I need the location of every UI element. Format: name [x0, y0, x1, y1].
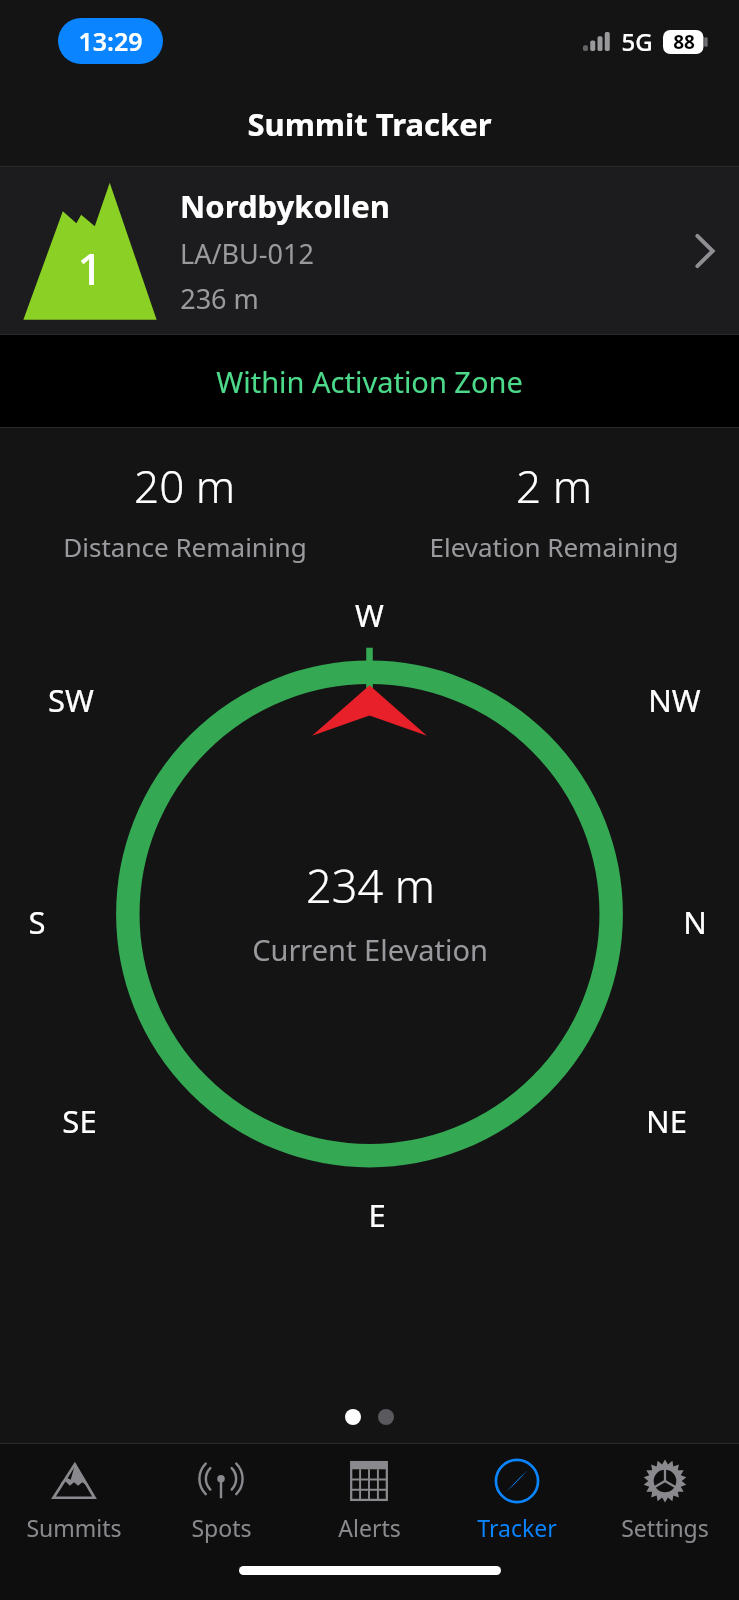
staticText: NW [648, 679, 701, 721]
staticText: Spots [191, 1512, 252, 1543]
staticText: Nordbykollen [180, 185, 390, 227]
staticText: SE [62, 1100, 97, 1142]
button[interactable]: Alerts [295, 1444, 443, 1554]
staticText: N [683, 901, 707, 943]
staticText: 20 m [134, 456, 235, 516]
staticText: 1 [77, 238, 103, 298]
button[interactable]: Settings [591, 1444, 739, 1554]
button[interactable]: 1 [0, 167, 739, 334]
staticText: 5G [621, 25, 653, 58]
staticText: Tracker [477, 1512, 557, 1543]
button[interactable]: Spots [147, 1444, 295, 1554]
staticText: W [355, 594, 384, 636]
staticText: 2 m [516, 456, 592, 516]
staticText: 234 m [306, 855, 435, 916]
other: Open summit details [693, 231, 717, 271]
staticText: Settings [621, 1512, 709, 1543]
staticText: 88 [673, 29, 695, 55]
button[interactable]: Summits [0, 1444, 147, 1554]
staticText: Distance Remaining [63, 529, 307, 564]
button[interactable]: Tracker [443, 1444, 591, 1554]
staticText: Summit Tracker [247, 103, 492, 145]
staticText: 236 m [180, 280, 259, 317]
staticText: Summits [26, 1512, 122, 1543]
staticText: 13:29 [78, 24, 143, 58]
staticText: LA/BU-012 [180, 235, 314, 272]
staticText: SW [48, 679, 94, 721]
staticText: Alerts [338, 1512, 401, 1543]
staticText: NE [646, 1100, 687, 1142]
staticText: E [368, 1194, 386, 1236]
staticText: Elevation Remaining [429, 529, 679, 564]
staticText: Current Elevation [252, 930, 488, 969]
staticText: S [28, 901, 46, 943]
staticText: Within Activation Zone [216, 362, 523, 401]
